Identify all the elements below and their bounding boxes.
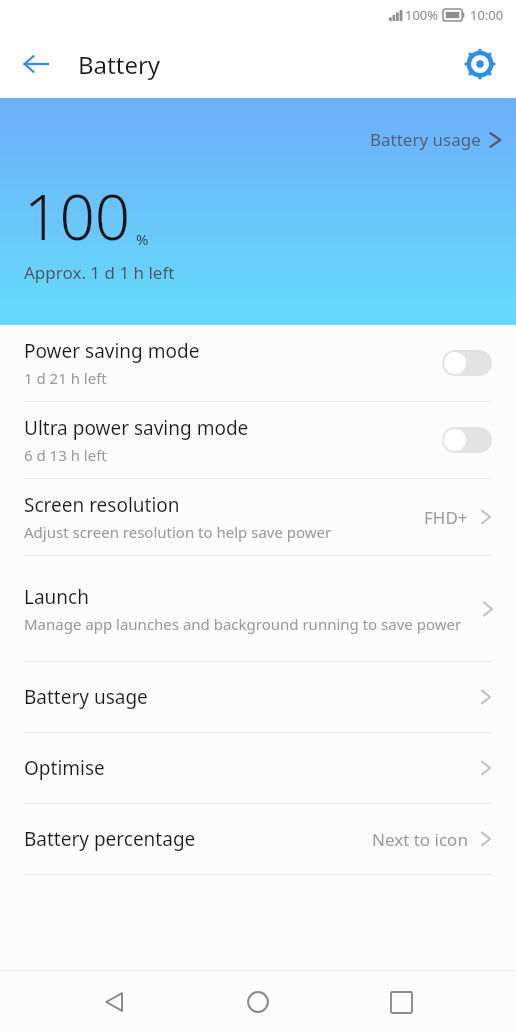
staticText: Launch: [24, 584, 89, 610]
staticText: Ultra power saving mode: [24, 415, 249, 441]
staticText: 100%: [405, 6, 439, 24]
button[interactable]: Battery usage: [0, 662, 516, 732]
button[interactable]: Recent apps: [373, 974, 429, 1030]
button[interactable]: Battery usage: [370, 128, 502, 151]
button[interactable]: Optimise: [0, 733, 516, 803]
staticText: FHD+: [424, 506, 468, 529]
staticText: Battery usage: [370, 128, 481, 151]
button[interactable]: Back: [10, 38, 62, 90]
staticText: 100: [24, 174, 131, 258]
staticText: 1 d 21 h left: [24, 368, 107, 388]
staticText: Optimise: [24, 755, 480, 781]
staticText: %: [136, 229, 149, 249]
staticText: Manage app launches and background runni…: [24, 614, 462, 634]
staticText: Adjust screen resolution to help save po…: [24, 522, 332, 542]
button[interactable]: Ultra power saving mode: [0, 402, 516, 478]
staticText: Approx. 1 d 1 h left: [24, 261, 175, 284]
button[interactable]: Power saving mode: [0, 325, 516, 401]
button[interactable]: Home: [230, 974, 286, 1030]
button[interactable]: Launch: [0, 556, 516, 661]
staticText: 10:00: [470, 6, 504, 24]
button[interactable]: Back: [87, 974, 143, 1030]
button[interactable]: Battery percentage: [0, 804, 516, 874]
staticText: Power saving mode: [24, 338, 200, 364]
staticText: Battery usage: [24, 684, 480, 710]
staticText: 6 d 13 h left: [24, 445, 107, 465]
staticText: Battery: [78, 48, 161, 81]
staticText: Next to icon: [372, 828, 468, 851]
staticText: Screen resolution: [24, 492, 180, 518]
button[interactable]: Settings: [454, 38, 506, 90]
button[interactable]: Screen resolution: [0, 479, 516, 555]
staticText: Battery percentage: [24, 826, 372, 852]
